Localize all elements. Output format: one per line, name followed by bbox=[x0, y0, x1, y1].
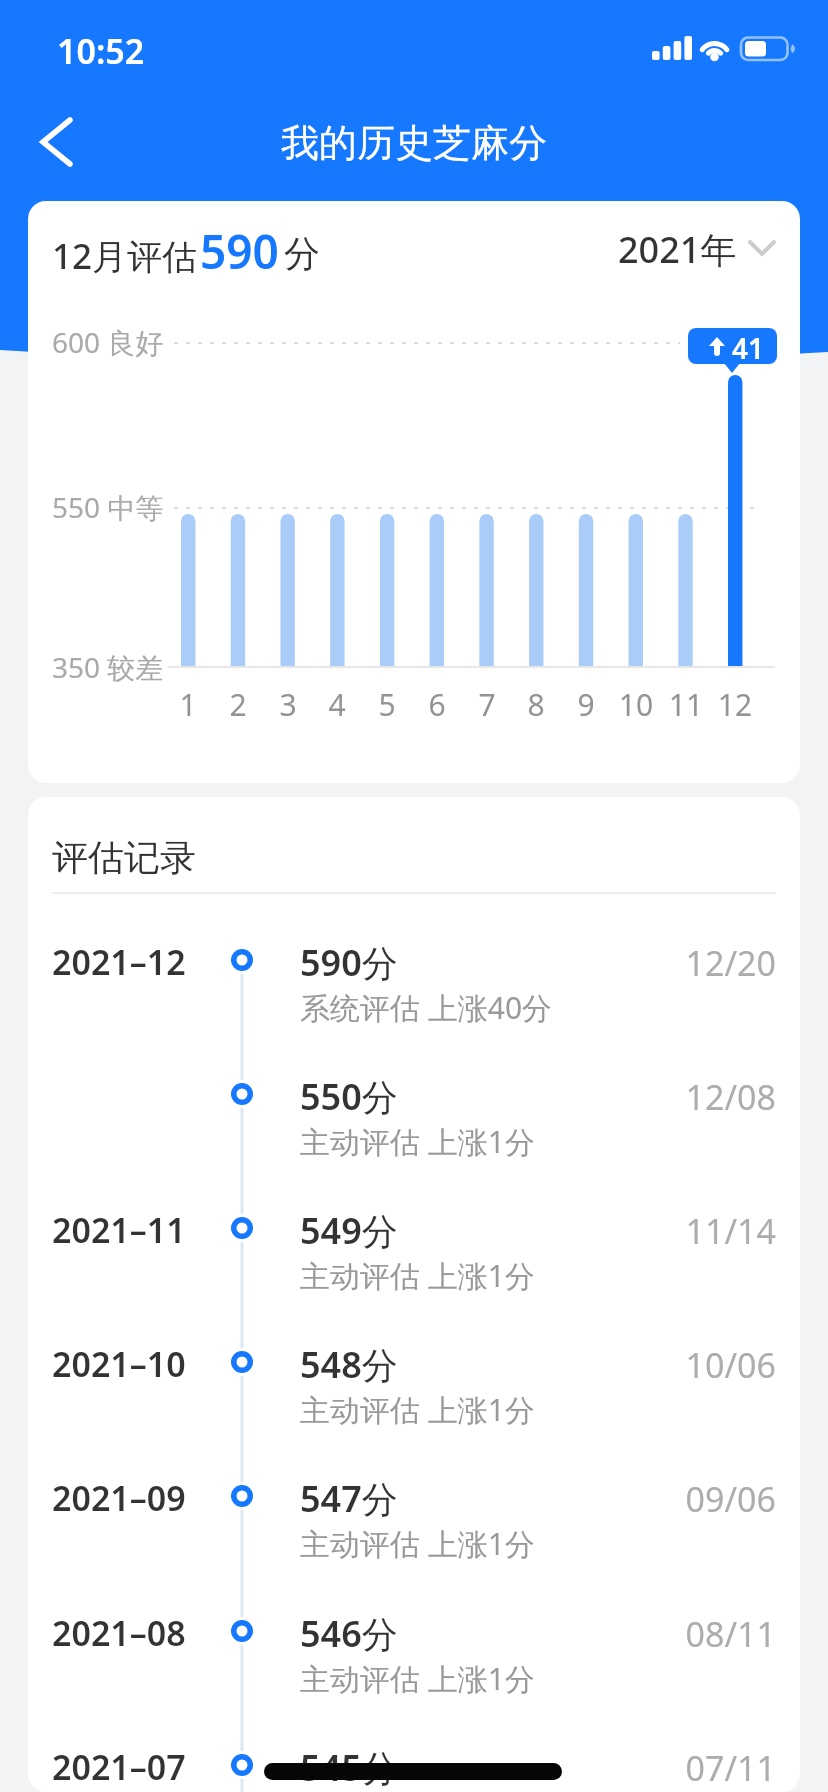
button[interactable]: 2021–12 bbox=[28, 930, 800, 1050]
staticText: 9 bbox=[566, 684, 606, 725]
staticText: 系统评估 上涨40分 bbox=[300, 987, 553, 1028]
staticText: 6 bbox=[417, 684, 457, 725]
button[interactable]: 550分 bbox=[28, 1064, 800, 1184]
staticText: 548分 bbox=[300, 1340, 398, 1389]
button[interactable]: 2021–08 bbox=[28, 1601, 800, 1721]
staticText: 我的历史芝麻分 bbox=[0, 119, 828, 167]
button[interactable]: 2021年 bbox=[618, 224, 775, 274]
button[interactable]: 2021–09 bbox=[28, 1466, 800, 1586]
staticText: 评估记录 bbox=[52, 835, 196, 880]
staticText: 08/11 bbox=[528, 1611, 776, 1657]
staticText: 550分 bbox=[300, 1072, 398, 1121]
staticText: 主动评估 上涨1分 bbox=[300, 1121, 535, 1162]
staticText: 2 bbox=[218, 684, 258, 725]
staticText: 主动评估 上涨1分 bbox=[300, 1255, 535, 1296]
button[interactable]: 2021–10 bbox=[28, 1332, 800, 1452]
staticText: 12/08 bbox=[528, 1074, 776, 1120]
staticText: 2021–10 bbox=[52, 1341, 186, 1387]
staticText: 2021–09 bbox=[52, 1475, 186, 1521]
staticText: 4 bbox=[317, 684, 357, 725]
staticText: 546分 bbox=[300, 1609, 398, 1658]
staticText: 12月评估 bbox=[52, 232, 198, 280]
staticText: 主动评估 上涨1分 bbox=[300, 1389, 535, 1430]
staticText: 2021–12 bbox=[52, 939, 186, 985]
staticText: 590 bbox=[200, 220, 279, 283]
staticText: 主动评估 上涨1分 bbox=[300, 1523, 535, 1564]
staticText: 12/20 bbox=[528, 940, 776, 986]
staticText: 8 bbox=[516, 684, 556, 725]
staticText: 2021年 bbox=[618, 225, 737, 274]
staticText: 1 bbox=[168, 684, 208, 725]
staticText: 11 bbox=[666, 684, 706, 725]
button[interactable]: 2021–11 bbox=[28, 1198, 800, 1318]
staticText: 41 bbox=[732, 329, 765, 367]
staticText: 10:52 bbox=[57, 28, 145, 74]
staticText: 547分 bbox=[300, 1474, 398, 1523]
staticText: 590分 bbox=[300, 938, 398, 987]
staticText: 09/06 bbox=[528, 1476, 776, 1522]
staticText: 2021–08 bbox=[52, 1610, 186, 1656]
staticText: 11/14 bbox=[528, 1208, 776, 1254]
staticText: 550 中等 bbox=[52, 488, 164, 526]
staticText: 545分 bbox=[300, 1743, 398, 1792]
staticText: 350 较差 bbox=[52, 648, 164, 686]
staticText: 分 bbox=[284, 231, 320, 276]
staticText: 5 bbox=[367, 684, 407, 725]
staticText: 10 bbox=[616, 684, 656, 725]
staticText: 12 bbox=[715, 684, 755, 725]
staticText: 2021–07 bbox=[52, 1744, 186, 1790]
staticText: 600 良好 bbox=[52, 323, 164, 361]
staticText: 2021–11 bbox=[52, 1207, 186, 1253]
button[interactable]: 2021–07 bbox=[28, 1735, 800, 1792]
button[interactable] bbox=[28, 110, 92, 174]
staticText: 主动评估 上涨1分 bbox=[300, 1658, 535, 1699]
staticText: 549分 bbox=[300, 1206, 398, 1255]
staticText: 7 bbox=[467, 684, 507, 725]
staticText: 10/06 bbox=[528, 1342, 776, 1388]
staticText: 07/11 bbox=[528, 1745, 776, 1791]
staticText: 3 bbox=[268, 684, 308, 725]
